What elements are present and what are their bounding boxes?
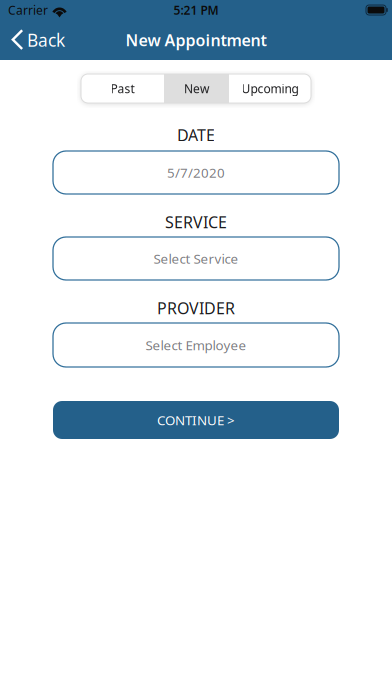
button[interactable]: Back: [0, 20, 73, 60]
button[interactable]: Select Employee: [53, 323, 339, 367]
staticText: PROVIDER: [157, 297, 235, 319]
staticText: Carrier: [8, 2, 48, 18]
staticText: DATE: [177, 124, 215, 146]
staticText: Back: [27, 28, 65, 51]
staticText: SERVICE: [165, 211, 227, 233]
button[interactable]: Past: [81, 74, 164, 103]
button[interactable]: CONTINUE >: [53, 401, 339, 439]
button[interactable]: Upcoming: [229, 74, 311, 103]
staticText: 5/7/2020: [167, 164, 225, 181]
button[interactable]: New: [164, 74, 229, 103]
staticText: Select Service: [153, 250, 238, 267]
staticText: New: [184, 80, 209, 96]
staticText: CONTINUE >: [157, 411, 235, 429]
button[interactable]: 5/7/2020: [53, 151, 339, 194]
button[interactable]: Select Service: [53, 237, 339, 280]
staticText: Upcoming: [241, 80, 298, 96]
staticText: New Appointment: [125, 29, 266, 51]
staticText: Select Employee: [145, 336, 246, 354]
staticText: 5:21 PM: [173, 2, 218, 18]
staticText: Past: [110, 80, 134, 96]
